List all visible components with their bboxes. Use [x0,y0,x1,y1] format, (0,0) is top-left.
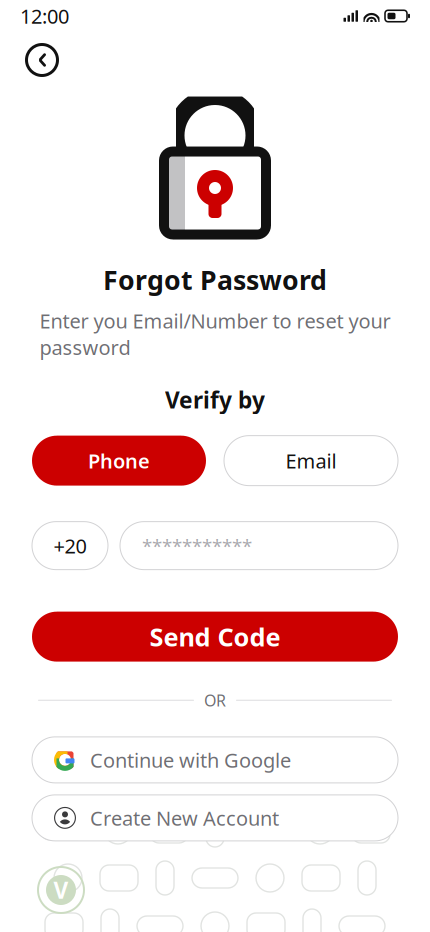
staticText: Forgot Password [103,262,327,297]
staticText: Email [285,447,336,474]
staticText: Continue with Google [90,747,291,773]
staticText: Create New Account [90,805,279,831]
staticText: OR [204,690,226,711]
staticText: 12:00 [20,3,69,29]
staticText: *********** [142,533,252,558]
staticText: Phone [88,447,150,474]
staticText: +20 [53,532,86,559]
button[interactable]: Phone [32,436,206,486]
button[interactable]: Continue with Google [32,737,398,783]
button[interactable]: *********** [120,522,398,570]
button[interactable]: Send Code [32,612,398,662]
button[interactable]: Email [224,436,398,486]
button[interactable]: Create New Account [32,795,398,841]
staticText: Send Code [149,620,280,653]
staticText: V [53,875,68,905]
staticText: Verify by [165,384,265,415]
button[interactable]: +20 [32,522,108,570]
button[interactable]: Back [20,38,64,82]
staticText: Enter you Email/Number to reset your pas… [39,307,390,360]
